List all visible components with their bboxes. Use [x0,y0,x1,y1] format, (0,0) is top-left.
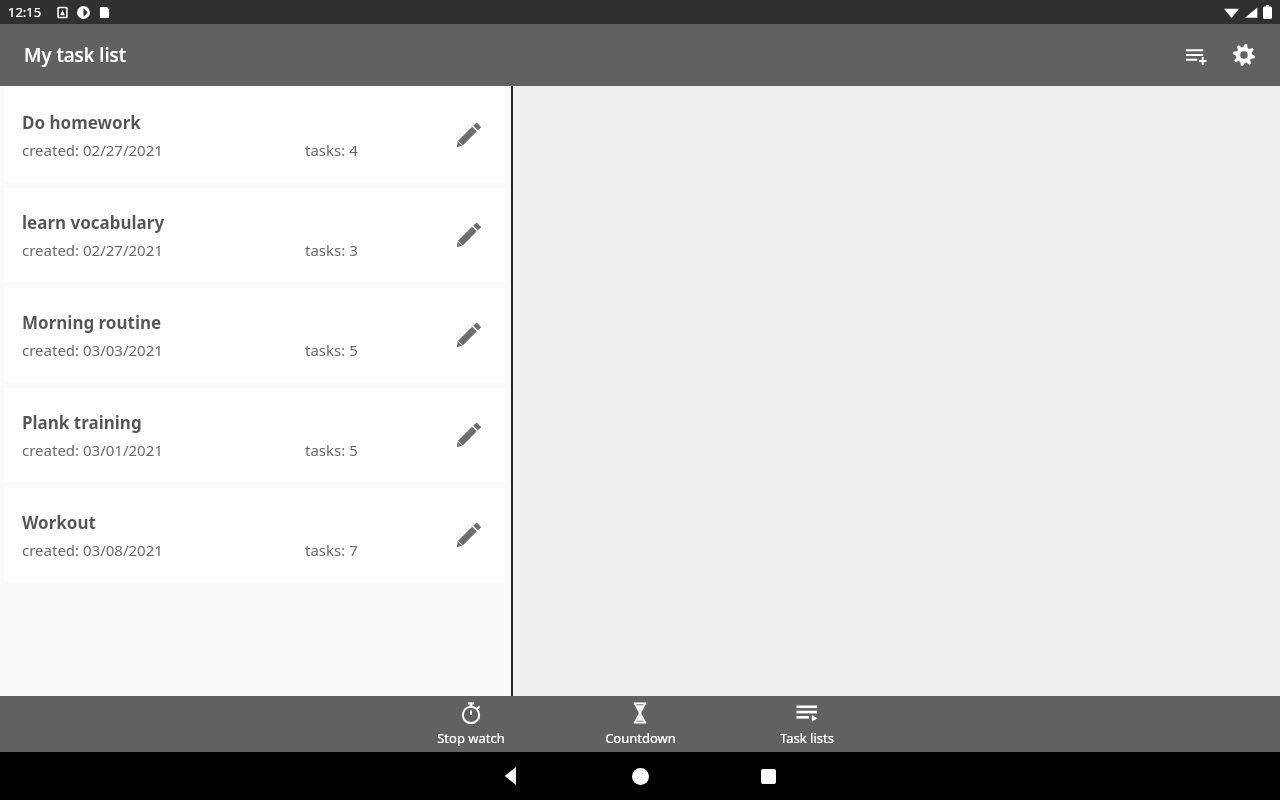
staticText: My task list [24,42,127,68]
button[interactable]: Edit learn vocabulary [445,211,493,259]
button[interactable]: Stop watch [411,696,531,752]
button[interactable]: Morning routine [4,288,505,382]
button[interactable]: Workout [4,488,505,582]
button[interactable]: Edit Morning routine [445,311,493,359]
button[interactable]: Back [488,752,536,800]
staticText: 12:15 [8,3,42,21]
staticText: created: 02/27/2021 [22,140,163,160]
button[interactable]: Edit Workout [445,511,493,559]
staticText: created: 03/01/2021 [22,440,163,460]
button[interactable]: Plank training [4,388,505,482]
button[interactable]: learn vocabulary [4,188,505,282]
staticText: created: 03/08/2021 [22,540,163,560]
staticText: Stop watch [437,729,505,747]
button[interactable]: Recents [744,752,792,800]
staticText: Do homework [22,111,141,134]
button[interactable]: Settings [1220,31,1268,79]
button[interactable]: Task lists [747,696,867,752]
button[interactable]: Add task list [1172,31,1220,79]
staticText: Workout [22,511,96,534]
staticText: Plank training [22,411,142,434]
staticText: Morning routine [22,311,162,334]
button[interactable]: Countdown [580,696,700,752]
staticText: Task lists [780,729,834,747]
staticText: tasks: 5 [305,340,358,360]
other: Countdown [628,701,652,725]
staticText: tasks: 4 [305,140,358,160]
button[interactable]: Home [616,752,664,800]
staticText: tasks: 5 [305,440,358,460]
other: Task lists [795,701,819,725]
staticText: tasks: 3 [305,240,358,260]
button[interactable]: Edit Plank training [445,411,493,459]
other: Stop watch [459,701,483,725]
button[interactable]: Do homework [4,88,505,182]
staticText: learn vocabulary [22,211,165,234]
staticText: Countdown [605,729,676,747]
button[interactable]: Edit Do homework [445,111,493,159]
staticText: created: 03/03/2021 [22,340,163,360]
staticText: created: 02/27/2021 [22,240,163,260]
staticText: tasks: 7 [305,540,358,560]
